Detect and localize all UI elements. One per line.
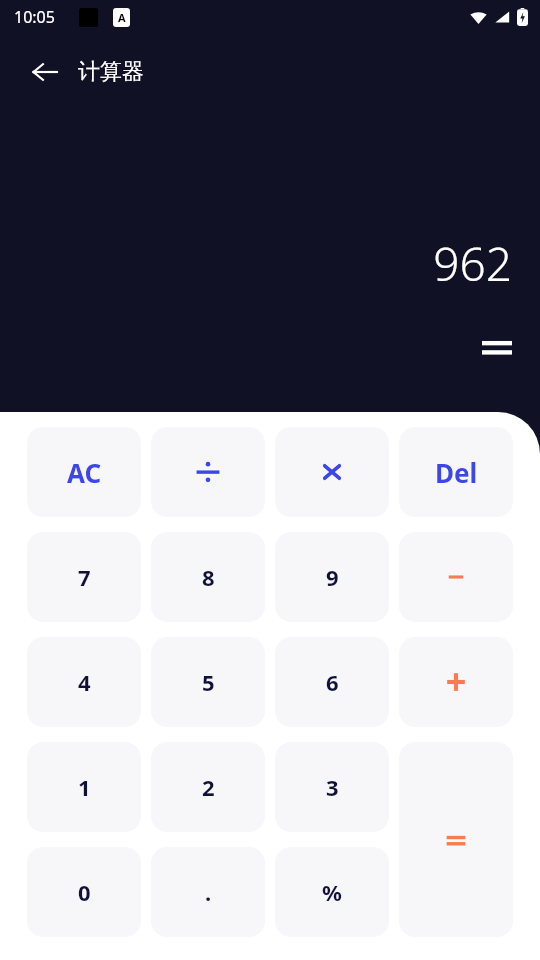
- button[interactable]: Equals: [399, 742, 513, 937]
- staticText: .: [205, 877, 212, 907]
- button[interactable]: Back: [22, 49, 68, 95]
- button[interactable]: 5: [151, 637, 265, 727]
- staticText: 1: [78, 772, 91, 802]
- button[interactable]: Del: [399, 427, 513, 517]
- staticText: 962: [433, 232, 512, 295]
- staticText: 7: [78, 562, 91, 592]
- button[interactable]: 4: [27, 637, 141, 727]
- staticText: 9: [326, 562, 339, 592]
- staticText: 5: [202, 667, 215, 697]
- button[interactable]: %: [275, 847, 389, 937]
- button[interactable]: AC: [27, 427, 141, 517]
- button[interactable]: 7: [27, 532, 141, 622]
- staticText: %: [322, 877, 342, 907]
- button[interactable]: 3: [275, 742, 389, 832]
- button[interactable]: .: [151, 847, 265, 937]
- staticText: Del: [435, 455, 478, 490]
- staticText: 3: [326, 772, 339, 802]
- button[interactable]: Multiply: [275, 427, 389, 517]
- staticText: 6: [326, 667, 339, 697]
- staticText: 计算器: [78, 58, 144, 86]
- button[interactable]: 8: [151, 532, 265, 622]
- staticText: 8: [202, 562, 215, 592]
- staticText: 2: [202, 772, 215, 802]
- staticText: 10:05: [14, 6, 55, 28]
- button[interactable]: Minus: [399, 532, 513, 622]
- button[interactable]: 1: [27, 742, 141, 832]
- button[interactable]: Divide: [151, 427, 265, 517]
- button[interactable]: 6: [275, 637, 389, 727]
- button[interactable]: 0: [27, 847, 141, 937]
- staticText: 4: [78, 667, 91, 697]
- staticText: 0: [78, 877, 91, 907]
- staticText: AC: [67, 455, 102, 490]
- button[interactable]: 9: [275, 532, 389, 622]
- button[interactable]: Plus: [399, 637, 513, 727]
- button[interactable]: 2: [151, 742, 265, 832]
- staticText: A: [118, 10, 126, 25]
